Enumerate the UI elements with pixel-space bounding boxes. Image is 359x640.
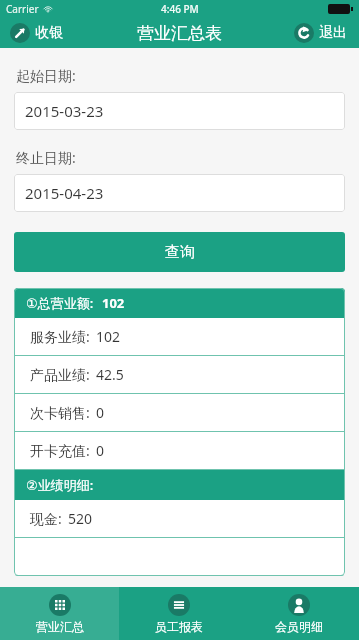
staticText: 服务业绩: [30,327,90,346]
staticText: 营业汇总 [36,619,84,634]
button[interactable]: 2015-03-23 [14,92,345,130]
button[interactable]: 2015-04-23 [14,174,345,212]
staticText: 4:46 PM [161,2,199,16]
staticText: 42.5 [96,365,124,384]
button[interactable] [14,538,345,575]
staticText: 终止日期: [16,148,76,167]
staticText: 产品业绩: [30,365,90,384]
staticText: Carrier [6,2,39,16]
staticText: 员工报表 [155,619,203,634]
staticText: 0 [96,441,105,460]
other: 收银 [10,23,30,43]
button[interactable]: 产品业绩: [14,356,345,393]
staticText: 102 [96,327,121,346]
staticText: ②业绩明细: [26,476,94,494]
button[interactable]: 收银 [6,21,67,45]
staticText: 查询 [165,243,195,262]
staticText: 2015-03-23 [25,101,104,121]
button[interactable]: 员工报表 [119,587,239,640]
staticText: 营业汇总表 [137,23,222,44]
staticText: 收银 [35,24,63,42]
staticText: 2015-04-23 [25,183,104,203]
staticText: 退出 [319,24,347,42]
staticText: 现金: [30,509,62,528]
button[interactable]: 次卡销售: [14,394,345,431]
button[interactable]: 退出 [290,21,351,45]
staticText: 会员明细 [275,619,323,634]
staticText: 起始日期: [16,66,76,85]
other: 退出 [294,23,314,43]
staticText: 102 [102,294,125,312]
button[interactable]: 查询 [14,232,345,272]
staticText: 520 [68,509,93,528]
staticText: 0 [96,403,105,422]
button[interactable]: 会员明细 [239,587,359,640]
staticText: 次卡销售: [30,403,90,422]
staticText: ①总营业额: [26,294,94,312]
button[interactable]: 现金: [14,500,345,537]
button[interactable]: 服务业绩: [14,318,345,355]
button[interactable]: 开卡充值: [14,432,345,469]
staticText: 开卡充值: [30,441,90,460]
button[interactable]: 营业汇总 [0,587,119,640]
